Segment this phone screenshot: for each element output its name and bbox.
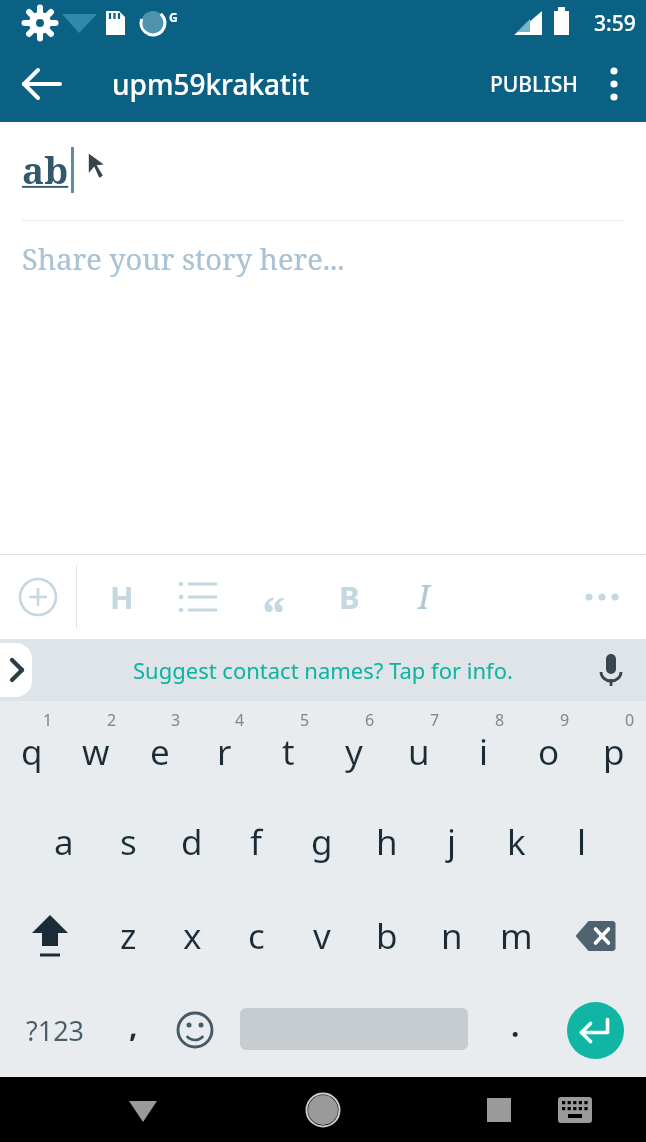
button[interactable]: Backspace <box>549 889 646 983</box>
button[interactable]: a <box>32 795 96 889</box>
button[interactable]: ab <box>0 122 646 554</box>
staticText: c <box>248 912 265 960</box>
button[interactable]: Emoji <box>164 999 226 1061</box>
button[interactable]: z <box>96 889 160 983</box>
button[interactable]: n <box>419 889 484 983</box>
staticText: e <box>150 728 170 776</box>
button[interactable]: c <box>224 889 289 983</box>
button[interactable]: 7 <box>386 701 451 795</box>
button[interactable]: , <box>104 993 162 1067</box>
button[interactable]: . <box>486 993 544 1067</box>
staticText: 2 <box>107 709 117 731</box>
staticText: 8 <box>495 709 505 731</box>
button[interactable]: 4 <box>192 701 256 795</box>
staticText: 4 <box>235 709 245 731</box>
staticText: upm59krakatit <box>112 65 310 103</box>
button[interactable]: 6 <box>321 701 386 795</box>
staticText: q <box>21 728 43 776</box>
button[interactable]: 3 <box>128 701 192 795</box>
staticText: s <box>120 818 137 866</box>
button[interactable]: f <box>224 795 289 889</box>
staticText: G <box>169 9 178 25</box>
button[interactable]: b <box>354 889 419 983</box>
button[interactable]: s <box>96 795 160 889</box>
staticText: 0 <box>625 709 635 731</box>
button[interactable]: “ <box>248 571 300 623</box>
staticText: d <box>181 818 203 866</box>
staticText: “ <box>262 580 286 632</box>
button[interactable]: v <box>289 889 354 983</box>
staticText: ?123 <box>26 1012 85 1049</box>
button[interactable]: k <box>484 795 549 889</box>
button[interactable]: m <box>484 889 549 983</box>
staticText: p <box>603 728 625 776</box>
staticText: h <box>376 818 398 866</box>
button[interactable]: B <box>323 571 375 623</box>
button[interactable]: PUBLISH <box>480 60 588 109</box>
button[interactable]: g <box>289 795 354 889</box>
staticText: 6 <box>365 709 375 731</box>
staticText: m <box>500 912 533 960</box>
button[interactable]: 0 <box>581 701 646 795</box>
staticText: o <box>538 728 560 776</box>
button[interactable]: Back <box>114 1081 172 1139</box>
staticText: 5 <box>300 709 310 731</box>
staticText: z <box>120 912 137 960</box>
staticText: H <box>110 576 134 618</box>
staticText: Share your story here... <box>22 239 345 278</box>
staticText: b <box>376 912 398 960</box>
button[interactable]: Switch keyboard <box>546 1081 604 1139</box>
staticText: . <box>511 1005 520 1046</box>
button[interactable]: Suggest contact names? Tap for info. <box>125 649 521 691</box>
button[interactable]: ?123 <box>8 993 102 1067</box>
button[interactable]: H <box>96 571 148 623</box>
staticText: B <box>339 576 360 618</box>
staticText: r <box>217 728 232 776</box>
button[interactable]: 9 <box>516 701 581 795</box>
button[interactable]: Add media <box>9 568 67 626</box>
staticText: 1 <box>43 709 53 731</box>
button[interactable]: Bulleted list <box>172 571 224 623</box>
staticText: 9 <box>560 709 570 731</box>
button[interactable]: h <box>354 795 419 889</box>
staticText: 3:59 <box>594 9 636 38</box>
button[interactable]: 1 <box>0 701 64 795</box>
staticText: j <box>447 818 457 866</box>
staticText: 3 <box>171 709 181 731</box>
button[interactable]: More formatting <box>576 571 628 623</box>
staticText: g <box>311 818 333 866</box>
button[interactable]: Expand suggestions <box>0 643 32 697</box>
staticText: , <box>129 1005 138 1046</box>
button[interactable]: 8 <box>451 701 516 795</box>
staticText: ab <box>22 144 69 194</box>
button[interactable]: d <box>160 795 224 889</box>
staticText: 7 <box>430 709 440 731</box>
staticText: l <box>577 818 587 866</box>
staticText: t <box>282 728 295 776</box>
staticText: a <box>54 818 74 866</box>
staticText: I <box>418 575 430 619</box>
button[interactable]: I <box>398 571 450 623</box>
staticText: Suggest contact names? Tap for info. <box>133 655 513 685</box>
button[interactable]: Recents <box>470 1081 528 1139</box>
staticText: k <box>507 818 526 866</box>
button[interactable]: x <box>160 889 224 983</box>
button[interactable]: j <box>419 795 484 889</box>
staticText: v <box>313 912 331 960</box>
button[interactable]: Home <box>294 1081 352 1139</box>
staticText: PUBLISH <box>490 70 578 99</box>
button[interactable]: 5 <box>256 701 321 795</box>
button[interactable]: Voice input <box>586 645 636 695</box>
button[interactable]: Shift <box>0 889 96 983</box>
button[interactable]: l <box>549 795 614 889</box>
button[interactable]: Back <box>10 52 74 116</box>
staticText: i <box>479 728 489 776</box>
staticText: u <box>408 728 430 776</box>
staticText: x <box>183 912 202 960</box>
button[interactable]: Enter <box>567 1002 624 1059</box>
button[interactable]: 2 <box>64 701 128 795</box>
staticText: f <box>250 818 263 866</box>
button[interactable]: More options <box>586 56 642 112</box>
staticText: n <box>441 912 463 960</box>
